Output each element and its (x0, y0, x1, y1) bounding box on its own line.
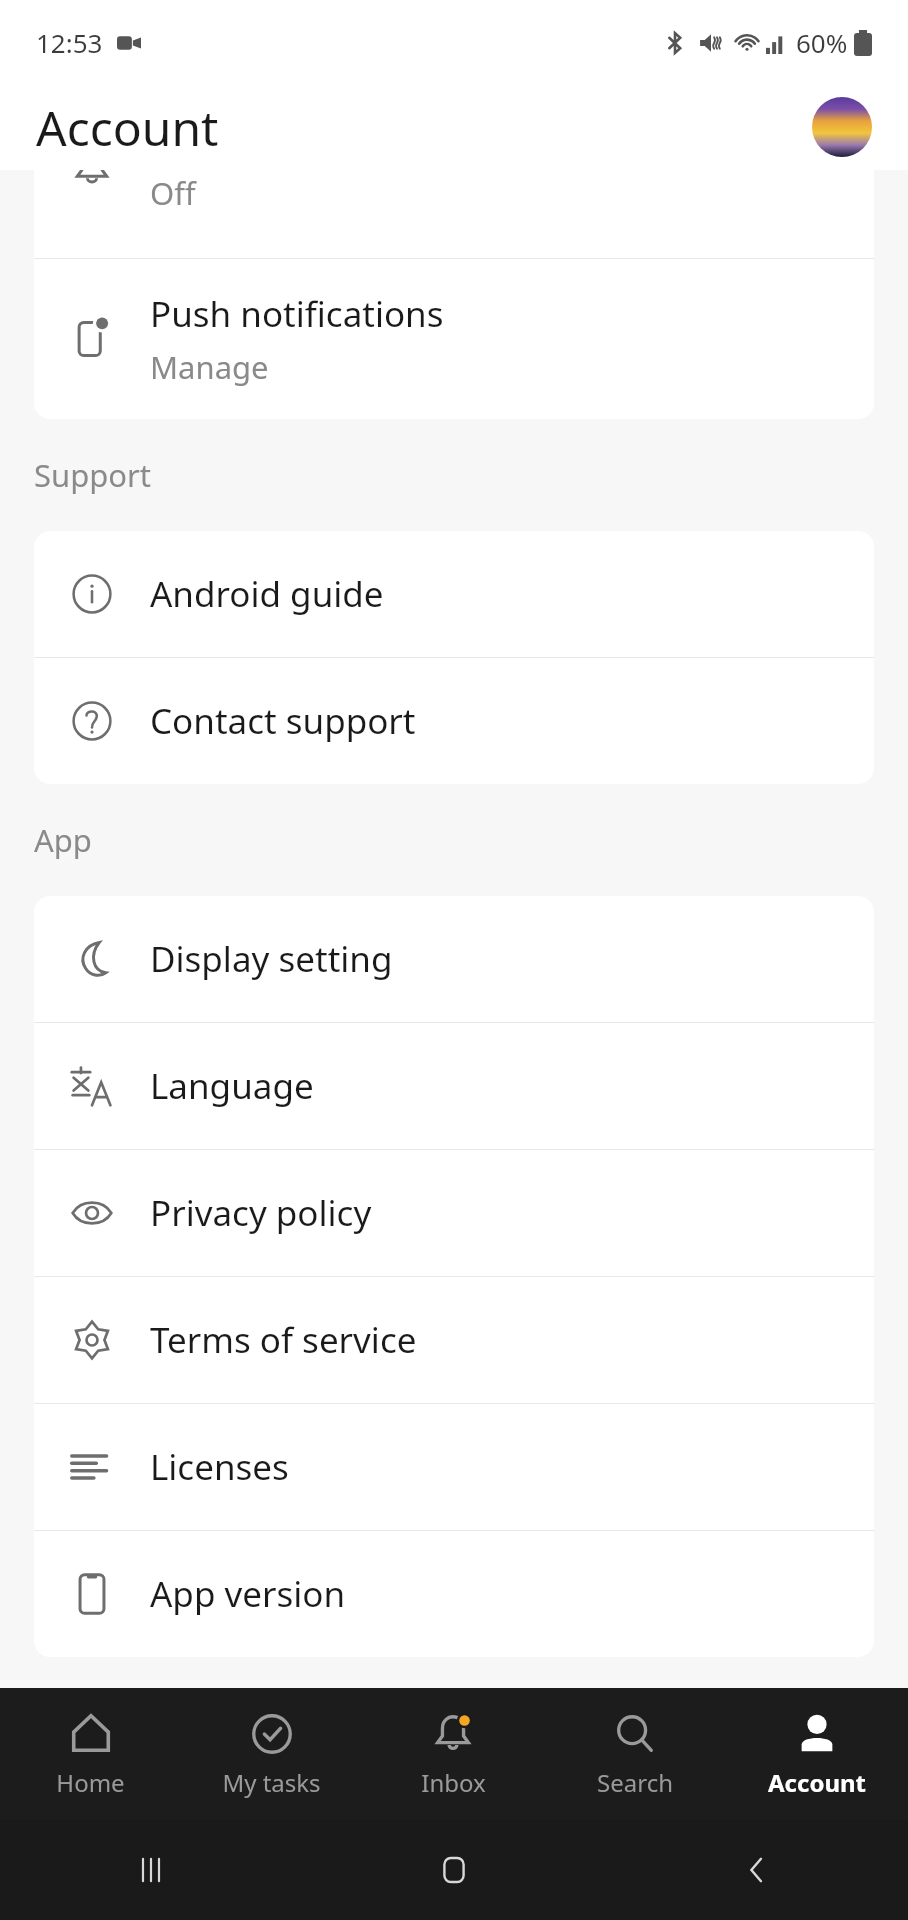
button[interactable]: Search (544, 1688, 726, 1820)
button[interactable]: Push notifications (34, 259, 874, 419)
staticText: App (34, 819, 92, 861)
staticText: 12:53 (36, 25, 103, 60)
button[interactable]: Language (34, 1023, 874, 1149)
staticText: Display setting (150, 935, 393, 983)
button[interactable]: Profile (812, 97, 872, 157)
staticText: Terms of service (150, 1316, 417, 1364)
button[interactable]: App version (34, 1531, 874, 1657)
button[interactable]: Licenses (34, 1404, 874, 1530)
button[interactable]: Account (726, 1688, 908, 1820)
staticText: Language (150, 1062, 314, 1110)
staticText: Account (768, 1766, 866, 1799)
staticText: Privacy policy (150, 1189, 372, 1237)
button[interactable]: Home (0, 1688, 181, 1820)
staticText: Contact support (150, 697, 416, 745)
staticText: Search (597, 1766, 673, 1799)
button[interactable]: Display setting (34, 896, 874, 1022)
staticText: Licenses (150, 1443, 289, 1491)
staticText: Push notifications (150, 290, 444, 338)
button[interactable]: My tasks (181, 1688, 362, 1820)
button[interactable]: Contact support (34, 658, 874, 784)
staticText: 60% (796, 25, 848, 60)
staticText: Manage (150, 346, 269, 388)
staticText: Home (56, 1766, 125, 1799)
staticText: Android guide (150, 570, 384, 618)
button[interactable]: Terms of service (34, 1277, 874, 1403)
staticText: Account (36, 95, 219, 160)
staticText: Support (34, 454, 152, 496)
button[interactable]: Inbox (362, 1688, 544, 1820)
staticText: App version (150, 1570, 346, 1618)
other: Recents (131, 1850, 171, 1890)
button[interactable]: Off (34, 170, 874, 258)
staticText: Off (150, 172, 196, 214)
button[interactable]: Android guide (34, 531, 874, 657)
other: Home (434, 1850, 474, 1890)
other: Back (737, 1850, 777, 1890)
staticText: Inbox (421, 1766, 486, 1799)
button[interactable]: Privacy policy (34, 1150, 874, 1276)
staticText: My tasks (222, 1766, 321, 1799)
